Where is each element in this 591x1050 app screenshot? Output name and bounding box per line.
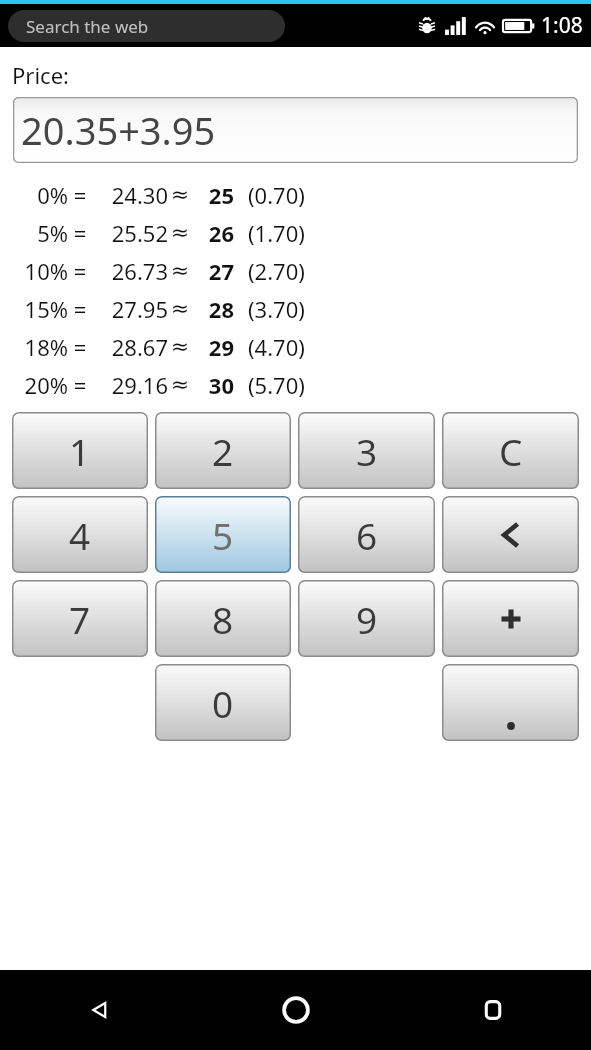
- staticText: 4: [69, 510, 91, 560]
- staticText: 29.16: [92, 370, 168, 400]
- button[interactable]: 20%: [0, 366, 591, 404]
- staticText: 1:08: [541, 11, 583, 40]
- button[interactable]: 2: [155, 412, 291, 489]
- staticText: =: [68, 180, 92, 210]
- button[interactable]: Home: [197, 970, 394, 1050]
- button[interactable]: C: [442, 412, 579, 489]
- staticText: 25: [192, 180, 234, 210]
- staticText: 20.35+3.95: [21, 104, 216, 156]
- button[interactable]: 10%: [0, 252, 591, 290]
- staticText: 18%: [0, 332, 68, 362]
- button[interactable]: 20.35+3.95: [13, 97, 578, 163]
- staticText: (3.70): [248, 294, 305, 324]
- staticText: =: [68, 294, 92, 324]
- button[interactable]: Back: [0, 970, 197, 1050]
- staticText: ≈: [168, 258, 192, 284]
- button[interactable]: 4: [12, 496, 148, 573]
- staticText: 1: [69, 426, 91, 476]
- button[interactable]: 5: [155, 496, 291, 573]
- button[interactable]: 8: [155, 580, 291, 657]
- button[interactable]: 9: [298, 580, 435, 657]
- staticText: (4.70): [248, 332, 305, 362]
- button[interactable]: [442, 580, 579, 657]
- staticText: 27: [192, 256, 234, 286]
- staticText: Search the web: [26, 15, 149, 38]
- staticText: =: [68, 332, 92, 362]
- staticText: 0%: [0, 180, 68, 210]
- staticText: =: [68, 370, 92, 400]
- staticText: 2: [212, 426, 234, 476]
- staticText: 8: [212, 594, 234, 644]
- button[interactable]: 5%: [0, 214, 591, 252]
- button[interactable]: 15%: [0, 290, 591, 328]
- staticText: 10%: [0, 256, 68, 286]
- staticText: ≈: [168, 296, 192, 322]
- button[interactable]: 0%: [0, 176, 591, 214]
- staticText: (5.70): [248, 370, 305, 400]
- staticText: 15%: [0, 294, 68, 324]
- staticText: Price:: [12, 60, 69, 90]
- button[interactable]: 7: [12, 580, 148, 657]
- button[interactable]: [442, 496, 579, 573]
- button[interactable]: Search the web: [8, 10, 285, 42]
- staticText: 26: [192, 218, 234, 248]
- staticText: ≈: [168, 182, 192, 208]
- button[interactable]: 18%: [0, 328, 591, 366]
- button[interactable]: 0: [155, 664, 291, 741]
- button[interactable]: [442, 664, 579, 741]
- staticText: 0: [212, 678, 234, 728]
- staticText: 27.95: [92, 294, 168, 324]
- button[interactable]: 1: [12, 412, 148, 489]
- staticText: ≈: [168, 334, 192, 360]
- staticText: 5: [212, 510, 234, 560]
- button[interactable]: 6: [298, 496, 435, 573]
- staticText: 28.67: [92, 332, 168, 362]
- staticText: 29: [192, 332, 234, 362]
- staticText: 26.73: [92, 256, 168, 286]
- staticText: (0.70): [248, 180, 305, 210]
- staticText: C: [499, 426, 523, 476]
- staticText: 9: [356, 594, 378, 644]
- staticText: ≈: [168, 220, 192, 246]
- staticText: 30: [192, 370, 234, 400]
- staticText: 20%: [0, 370, 68, 400]
- staticText: (2.70): [248, 256, 305, 286]
- staticText: ≈: [168, 372, 192, 398]
- staticText: 25.52: [92, 218, 168, 248]
- staticText: =: [68, 256, 92, 286]
- staticText: 24.30: [92, 180, 168, 210]
- staticText: 6: [356, 510, 378, 560]
- staticText: =: [68, 218, 92, 248]
- staticText: 5%: [0, 218, 68, 248]
- staticText: 7: [69, 594, 91, 644]
- staticText: (1.70): [248, 218, 305, 248]
- button[interactable]: Recents: [394, 970, 591, 1050]
- button[interactable]: 3: [298, 412, 435, 489]
- staticText: 3: [356, 426, 378, 476]
- staticText: 28: [192, 294, 234, 324]
